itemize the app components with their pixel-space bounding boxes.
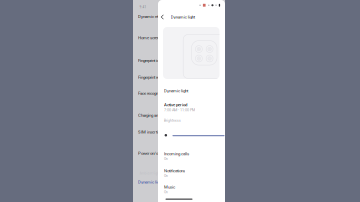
button[interactable]: Fingerprint recog (133, 0, 220, 7)
button[interactable]: Music (158, 184, 225, 196)
staticText: Dynamic effects (138, 14, 166, 19)
staticText: 7:00 AM - 11:00 PM (164, 108, 195, 112)
button[interactable]: Dynamic effects (133, 0, 220, 7)
staticText: Fingerprint recog (138, 75, 165, 80)
button[interactable]: Back (158, 12, 167, 22)
button[interactable]: SIM insertion ani (133, 0, 220, 7)
button[interactable]: Incoming calls (158, 151, 225, 163)
staticText: Brightness (164, 119, 181, 122)
staticText: Charging animat (138, 113, 166, 118)
staticText: Ambient light settings (139, 172, 174, 175)
staticText: Dynamic light (171, 14, 195, 19)
staticText: On (164, 157, 168, 161)
staticText: SIM insertion ani (138, 130, 168, 135)
staticText: 9:41 (139, 5, 146, 9)
staticText: On (164, 174, 168, 178)
staticText: Home screen-on (138, 35, 166, 40)
staticText: Fingerprint icon (138, 58, 163, 63)
button[interactable]: Power on/off ani (133, 0, 220, 7)
staticText: Face recognition (138, 91, 165, 96)
staticText: Power on/off ani (138, 151, 166, 156)
staticText: Dynamic light (138, 179, 162, 184)
staticText: On (164, 190, 168, 194)
button[interactable]: Face recognition (133, 0, 220, 7)
button[interactable]: Fingerprint icon (133, 0, 220, 7)
staticText: Notifications (164, 168, 185, 173)
staticText: Incoming calls (164, 151, 189, 156)
staticText: Music (164, 184, 175, 189)
button[interactable]: Home screen-on (133, 0, 220, 7)
staticText: Active period (164, 102, 187, 107)
button[interactable]: Notifications (158, 168, 225, 180)
staticText: Dynamic light (164, 88, 188, 93)
button[interactable]: Charging animat (133, 0, 220, 7)
